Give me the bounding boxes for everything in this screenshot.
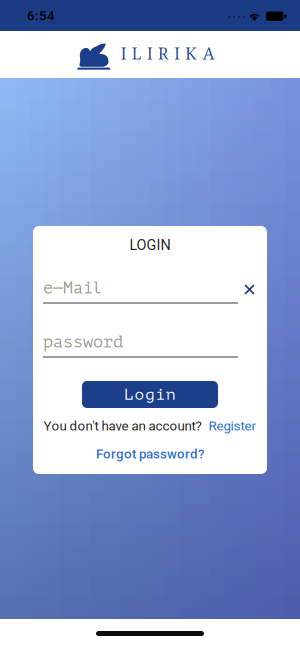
staticText: Forgot password?	[96, 446, 204, 462]
textField[interactable]: e—Mail	[43, 279, 233, 297]
button[interactable]: Clear e-Mail	[241, 281, 258, 298]
staticText: A	[203, 44, 215, 64]
staticText: 6:54	[27, 8, 55, 24]
button[interactable]: Forgot password?	[96, 444, 204, 464]
button[interactable]: Login	[82, 381, 218, 408]
staticText: I	[121, 44, 126, 64]
staticText: Login	[124, 385, 176, 403]
secureTextField[interactable]: password	[43, 333, 233, 351]
staticText: LOGIN	[129, 237, 170, 253]
staticText: Register	[208, 418, 256, 434]
staticText: You don't have an account?	[43, 418, 201, 434]
staticText: e—Mail	[43, 279, 103, 297]
staticText: I	[147, 44, 152, 64]
staticText: R	[158, 44, 168, 64]
staticText: I	[174, 44, 179, 64]
staticText: password	[43, 333, 123, 351]
staticText: K	[185, 44, 196, 64]
staticText: L	[132, 44, 141, 64]
button[interactable]: Register	[208, 418, 256, 434]
